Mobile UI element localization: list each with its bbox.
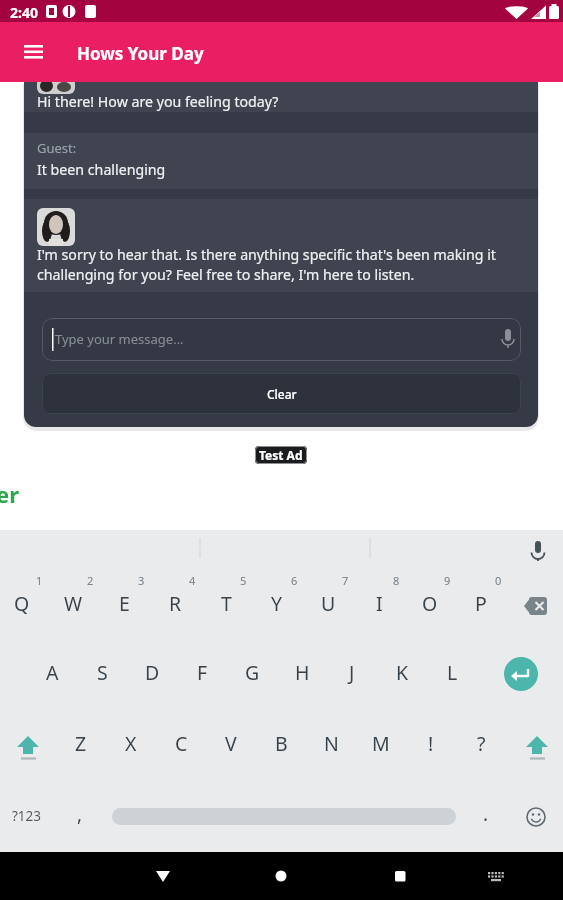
staticText: 5 [240, 573, 247, 588]
button[interactable] [259, 854, 303, 898]
button[interactable]: N [308, 717, 354, 769]
staticText: T [221, 590, 232, 617]
staticText: L [447, 659, 458, 686]
button[interactable]: Test Ad [255, 446, 307, 464]
staticText: B [275, 730, 288, 757]
button[interactable]: E [101, 577, 147, 629]
button[interactable]: Z [58, 717, 104, 769]
button[interactable]: H [279, 646, 325, 698]
button[interactable]: X [108, 717, 154, 769]
button[interactable]: M [358, 717, 404, 769]
staticText: X [125, 730, 137, 757]
button[interactable]: Y [254, 577, 300, 629]
staticText: R [169, 590, 182, 617]
staticText: I [376, 590, 383, 617]
staticText: W [64, 590, 83, 617]
button[interactable]: V [208, 717, 254, 769]
button[interactable] [512, 790, 560, 842]
staticText: 7 [342, 573, 349, 588]
staticText: P [475, 590, 487, 617]
button[interactable]: J [329, 646, 375, 698]
staticText: Hows Your Day [77, 42, 204, 65]
button[interactable]: K [379, 646, 425, 698]
staticText: V [225, 730, 237, 757]
staticText: 2:40 [10, 3, 38, 22]
staticText: 8 [393, 573, 400, 588]
staticText: O [422, 590, 438, 617]
button[interactable]: ?123 [4, 790, 50, 842]
staticText: . [483, 801, 489, 827]
staticText: 0 [495, 573, 502, 588]
staticText: 3 [138, 573, 145, 588]
button[interactable] [141, 854, 185, 898]
button[interactable]: B [258, 717, 304, 769]
staticText: D [145, 659, 160, 686]
button[interactable] [497, 650, 545, 698]
staticText: 6 [291, 573, 298, 588]
button[interactable] [378, 854, 422, 898]
staticText: A [46, 659, 59, 686]
staticText: Clear [267, 386, 297, 402]
staticText: Z [75, 730, 87, 757]
staticText: Type your message... [55, 330, 184, 348]
button[interactable]: I [356, 577, 402, 629]
staticText: 1 [36, 573, 43, 588]
staticText: U [321, 590, 336, 617]
staticText: G [245, 659, 260, 686]
staticText: Y [271, 590, 283, 617]
staticText: F [197, 659, 208, 686]
staticText: K [396, 659, 409, 686]
staticText: Hi there! How are you feeling today? [37, 92, 279, 111]
button[interactable]: D [129, 646, 175, 698]
staticText: , [77, 801, 83, 827]
staticText: M [372, 730, 390, 757]
staticText: N [324, 730, 339, 757]
staticText: Q [14, 590, 30, 617]
button[interactable]: S [79, 646, 125, 698]
staticText: H [295, 659, 310, 686]
button[interactable]: R [152, 577, 198, 629]
button[interactable]: A [29, 646, 75, 698]
staticText: It been challenging [37, 160, 166, 179]
button[interactable]: U [305, 577, 351, 629]
button[interactable] [474, 854, 518, 898]
button[interactable] [514, 717, 560, 769]
button[interactable] [16, 36, 52, 72]
button[interactable]: F [179, 646, 225, 698]
button[interactable]: Type your message... [42, 318, 521, 361]
button[interactable]: L [429, 646, 475, 698]
button[interactable]: O [407, 577, 453, 629]
button[interactable]: ? [458, 717, 504, 769]
staticText: I'm sorry to hear that. Is there anythin… [37, 245, 496, 284]
staticText: ?123 [12, 807, 42, 825]
button[interactable]: T [203, 577, 249, 629]
button[interactable] [5, 717, 51, 769]
staticText: J [349, 659, 355, 686]
button[interactable]: ! [408, 717, 454, 769]
button[interactable] [512, 577, 560, 629]
staticText: Test Ad [259, 447, 303, 463]
staticText: ? [477, 730, 486, 757]
button[interactable]: , [57, 788, 103, 840]
staticText: er [0, 479, 19, 509]
button[interactable]: Clear [42, 373, 521, 414]
staticText: Guest: [37, 139, 77, 157]
button[interactable]: P [458, 577, 504, 629]
button[interactable]: W [50, 577, 96, 629]
staticText: ! [428, 730, 434, 757]
staticText: C [175, 730, 188, 757]
staticText: S [97, 659, 108, 686]
button[interactable]: . [463, 788, 509, 840]
button[interactable]: Q [0, 577, 45, 629]
staticText: 4 [189, 573, 196, 588]
staticText: 9 [444, 573, 451, 588]
button[interactable]: C [158, 717, 204, 769]
staticText: E [119, 590, 130, 617]
button[interactable]: G [229, 646, 275, 698]
staticText: 2 [87, 573, 94, 588]
